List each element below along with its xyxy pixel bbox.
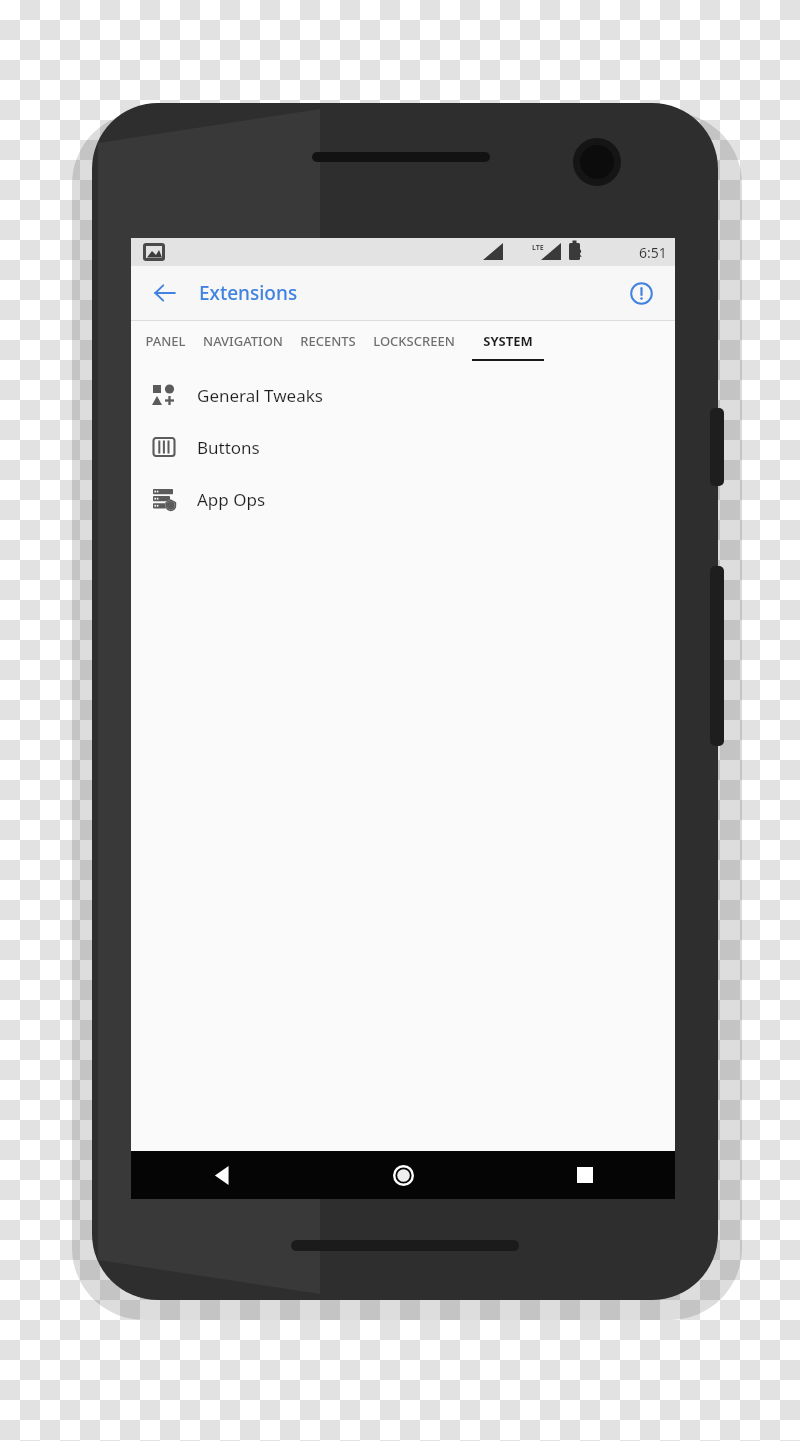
staticText: NAVIGATION — [203, 332, 283, 350]
staticText: Buttons — [197, 436, 260, 459]
button[interactable]: LOCKSCREEN — [373, 321, 455, 369]
button[interactable]: NAVIGATION — [203, 321, 283, 369]
button[interactable]: Buttons — [131, 421, 675, 473]
button[interactable]: SYSTEM — [472, 321, 544, 369]
button[interactable]: General Tweaks — [131, 369, 675, 421]
staticText: App Ops — [197, 488, 266, 511]
staticText: Extensions — [199, 280, 298, 306]
staticText: SYSTEM — [483, 332, 533, 350]
button[interactable]: Information — [621, 273, 661, 313]
staticText: LTE — [532, 243, 544, 253]
staticText: LOCKSCREEN — [373, 332, 455, 350]
button[interactable]: Back — [131, 1151, 313, 1199]
staticText: PANEL — [145, 332, 186, 350]
button[interactable]: Back — [145, 273, 185, 313]
staticText: 6:51 — [639, 243, 667, 262]
staticText: RECENTS — [300, 332, 356, 350]
button[interactable]: RECENTS — [300, 321, 356, 369]
button[interactable]: App Ops — [131, 473, 675, 525]
button[interactable]: PANEL — [145, 321, 186, 369]
staticText: R — [575, 245, 582, 260]
button[interactable]: Recent apps — [494, 1151, 675, 1199]
button[interactable]: Home — [313, 1151, 494, 1199]
staticText: General Tweaks — [197, 384, 323, 407]
